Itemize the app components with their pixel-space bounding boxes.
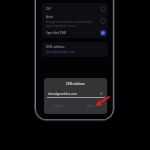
staticText: Auto <box>46 15 53 19</box>
button[interactable]: Cancel <box>53 102 63 109</box>
button[interactable]: Clear <box>100 92 103 95</box>
staticText: dns.adguard-dns.com <box>48 92 77 96</box>
staticText: Specified DNS <box>46 31 67 35</box>
staticText: Cancel <box>54 104 63 108</box>
staticText: DNS address <box>46 45 65 49</box>
staticText: Off <box>46 7 51 11</box>
staticText: dns.adguard-dns.com <box>46 50 75 54</box>
staticText: Encrypt transmissions automatically supp… <box>46 20 92 28</box>
button[interactable]: Specified DNS <box>42 28 108 38</box>
staticText: DNS address <box>44 82 107 86</box>
button[interactable]: Save <box>85 102 95 109</box>
staticText: Save <box>87 104 94 108</box>
button[interactable]: Auto <box>42 14 108 28</box>
button[interactable]: Off <box>42 3 108 14</box>
button[interactable]: DNS address <box>42 42 108 57</box>
